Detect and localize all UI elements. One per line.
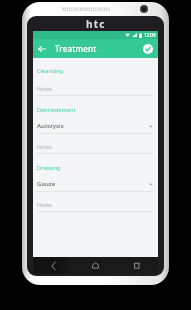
staticText: htc bbox=[86, 17, 106, 31]
staticText: Cleansing bbox=[37, 67, 64, 74]
button[interactable]: Dressing bbox=[37, 162, 154, 173]
staticText: Autolysis bbox=[37, 122, 149, 130]
button[interactable]: Recent apps bbox=[116, 257, 158, 274]
staticText: Dressing bbox=[37, 164, 61, 171]
staticText: Treatment bbox=[55, 43, 97, 54]
button[interactable]: Save bbox=[141, 42, 155, 56]
button[interactable]: Debriedement bbox=[37, 104, 154, 115]
staticText: 12:00 bbox=[144, 32, 156, 38]
button[interactable]: Notes bbox=[37, 84, 154, 96]
staticText: Notes bbox=[37, 85, 53, 92]
button[interactable]: Back bbox=[33, 257, 74, 274]
button[interactable]: Back bbox=[35, 42, 49, 56]
button[interactable]: Gauze bbox=[37, 179, 154, 192]
staticText: Debriedement bbox=[37, 106, 76, 113]
staticText: Notes bbox=[37, 201, 53, 208]
button[interactable]: Notes bbox=[37, 142, 154, 154]
staticText: Notes bbox=[37, 143, 53, 150]
button[interactable]: Home bbox=[74, 257, 116, 274]
button[interactable]: Autolysis bbox=[37, 121, 154, 134]
button[interactable]: Notes bbox=[37, 200, 154, 212]
button[interactable]: Cleansing bbox=[37, 65, 154, 76]
staticText: Gauze bbox=[37, 180, 149, 188]
